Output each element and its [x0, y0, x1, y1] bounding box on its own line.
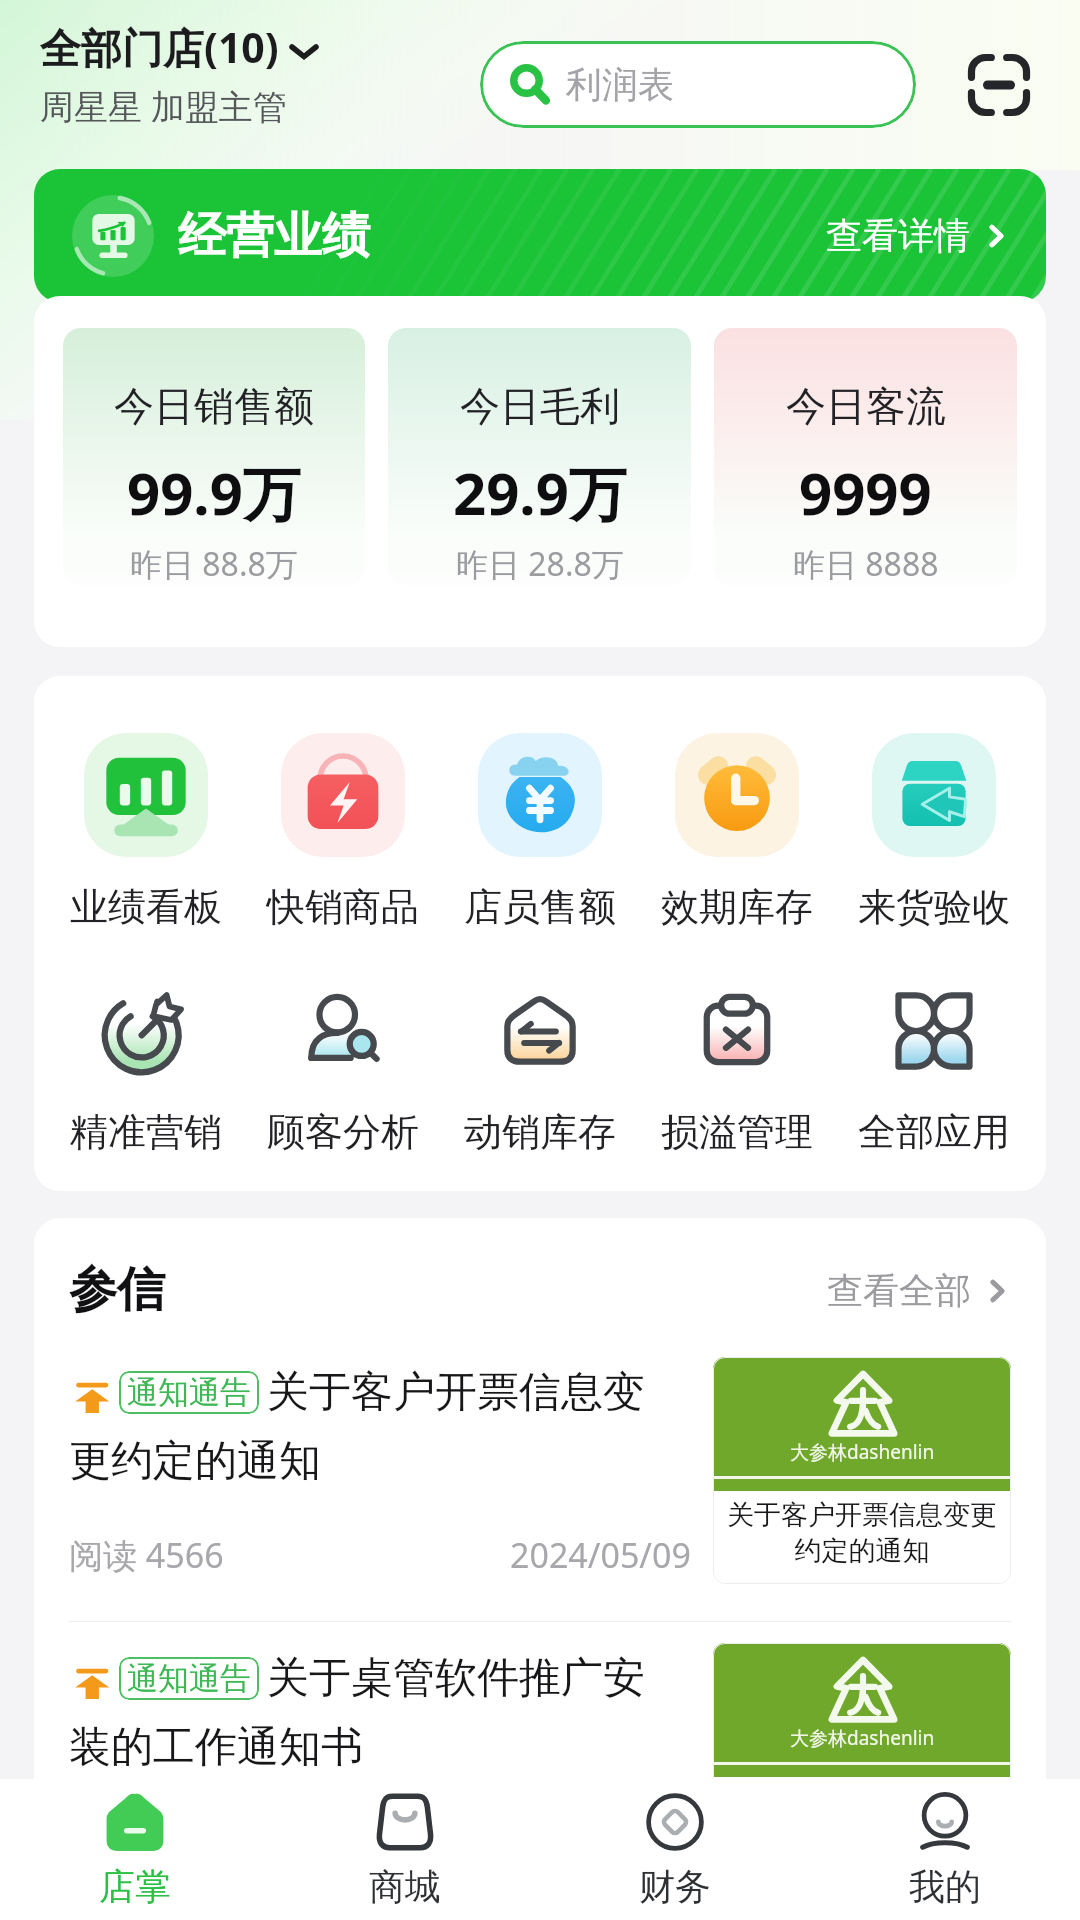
staticText: 99.9万 [127, 453, 301, 532]
staticText: 快销商品 [267, 883, 419, 931]
staticText: 阅读 4566 [69, 1532, 224, 1578]
button[interactable]: 店员售额 [441, 733, 638, 931]
staticText: 动销库存 [464, 1108, 616, 1156]
staticText: 全部应用 [858, 1108, 1010, 1156]
staticText: 商城 [369, 1864, 441, 1909]
staticText: 通知通告 [127, 1373, 251, 1412]
staticText: 昨日 8888 [793, 542, 939, 585]
staticText: 查看全部 [827, 1268, 971, 1313]
button[interactable]: 损溢管理 [638, 983, 835, 1156]
button[interactable]: 财务 [540, 1779, 810, 1920]
button[interactable]: 查看详情 [826, 213, 1010, 258]
button[interactable]: 今日销售额 [63, 328, 365, 585]
staticText: 29.9万 [453, 453, 627, 532]
staticText: 来货验收 [858, 883, 1010, 931]
button[interactable]: 今日客流 [714, 328, 1017, 585]
staticText: 财务 [639, 1864, 711, 1909]
staticText: 关于桌管软件推广安装的工作通知书 [718, 1784, 1006, 1854]
button[interactable]: 今日毛利 [388, 328, 691, 585]
staticText: 关于桌管软件推广安 [267, 1652, 645, 1705]
staticText: 昨日 28.8万 [456, 542, 624, 585]
staticText: 店员售额 [464, 883, 616, 931]
staticText: 2024/05/08 [510, 1818, 691, 1864]
staticText: 大参林dashenlin [790, 1725, 935, 1751]
staticText: 今日毛利 [460, 381, 620, 431]
staticText: 业绩看板 [70, 883, 222, 931]
staticText: 今日销售额 [114, 381, 314, 431]
staticText: 利润表 [566, 62, 674, 107]
staticText: 我的 [909, 1864, 981, 1909]
staticText: 顾客分析 [267, 1108, 419, 1156]
staticText: 精准营销 [70, 1108, 222, 1156]
staticText: 效期库存 [661, 883, 813, 931]
button[interactable]: 商城 [270, 1779, 540, 1920]
staticText: 关于客户开票信息变更约定的通知 [718, 1498, 1006, 1568]
button[interactable]: 利润表 [480, 41, 916, 128]
button[interactable]: 效期库存 [638, 733, 835, 931]
button[interactable]: 全部应用 [835, 983, 1032, 1156]
staticText: 周星星 加盟主管 [40, 83, 287, 129]
button[interactable]: 精准营销 [48, 983, 244, 1156]
button[interactable]: 快销商品 [244, 733, 441, 931]
staticText: 经营业绩 [178, 206, 370, 266]
button[interactable]: Scan [963, 49, 1035, 121]
staticText: 2024/05/09 [510, 1532, 691, 1578]
button[interactable]: 我的 [810, 1779, 1080, 1920]
staticText: 装的工作通知书 [69, 1721, 363, 1774]
staticText: 店掌 [99, 1864, 171, 1909]
staticText: 更约定的通知 [69, 1435, 321, 1488]
button[interactable]: 查看全部 [827, 1268, 1011, 1313]
staticText: 通知通告 [127, 1659, 251, 1698]
staticText: 昨日 88.8万 [130, 542, 298, 585]
button[interactable]: 全部门店(10) [40, 19, 319, 129]
staticText: 全部门店(10) [40, 19, 279, 75]
button[interactable]: 顾客分析 [244, 983, 441, 1156]
staticText: 关于客户开票信息变 [267, 1366, 645, 1419]
button[interactable]: 动销库存 [441, 983, 638, 1156]
button[interactable]: 店掌 [0, 1779, 270, 1920]
button[interactable]: 来货验收 [835, 733, 1032, 931]
staticText: 查看详情 [826, 213, 970, 258]
staticText: 9999 [799, 453, 932, 532]
staticText: 参信 [69, 1260, 165, 1320]
staticText: 今日客流 [786, 381, 946, 431]
staticText: 损溢管理 [661, 1108, 813, 1156]
staticText: 大参林dashenlin [790, 1439, 935, 1465]
button[interactable]: 业绩看板 [48, 733, 244, 931]
staticText: 阅读 1234 [69, 1818, 224, 1864]
